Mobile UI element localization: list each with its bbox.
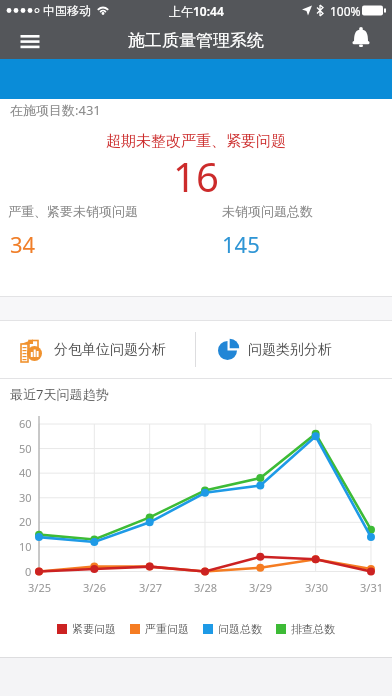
- staticText: 3/25: [28, 580, 51, 595]
- staticText: 50: [19, 441, 32, 456]
- staticText: 10: [19, 539, 32, 554]
- staticText: 最近7天问题趋势: [10, 385, 109, 403]
- staticText: 严重、紧要未销项问题: [8, 203, 138, 219]
- staticText: 施工质量管理系统: [128, 30, 264, 51]
- staticText: 0: [25, 564, 32, 579]
- staticText: 3/28: [194, 580, 217, 595]
- staticText: 34: [10, 229, 36, 259]
- staticText: 问题总数: [218, 622, 262, 636]
- staticText: 未销项问题总数: [222, 203, 313, 219]
- staticText: 3/30: [305, 580, 328, 595]
- button[interactable]: 分包单位问题分析: [0, 321, 195, 378]
- button[interactable]: [12, 28, 48, 56]
- staticText: 16: [173, 149, 219, 203]
- button[interactable]: [346, 24, 378, 56]
- button[interactable]: 问题类别分析: [196, 321, 392, 378]
- staticText: 20: [19, 514, 32, 529]
- staticText: 145: [222, 229, 260, 259]
- staticText: 3/31: [360, 580, 383, 595]
- staticText: 排查总数: [291, 622, 335, 636]
- staticText: 100%: [330, 3, 361, 19]
- staticText: 40: [19, 465, 32, 480]
- staticText: 超期未整改严重、紧要问题: [106, 132, 286, 151]
- staticText: 3/26: [83, 580, 106, 595]
- staticText: 60: [19, 416, 32, 431]
- staticText: 在施项目数:431: [10, 101, 101, 119]
- staticText: 中国移动: [43, 3, 91, 18]
- staticText: 3/29: [249, 580, 272, 595]
- staticText: 紧要问题: [72, 622, 116, 636]
- staticText: 30: [19, 490, 32, 505]
- staticText: 问题类别分析: [248, 341, 332, 359]
- staticText: 严重问题: [145, 622, 189, 636]
- staticText: 上午10:44: [169, 3, 224, 19]
- staticText: 3/27: [139, 580, 162, 595]
- staticText: 分包单位问题分析: [54, 341, 166, 359]
